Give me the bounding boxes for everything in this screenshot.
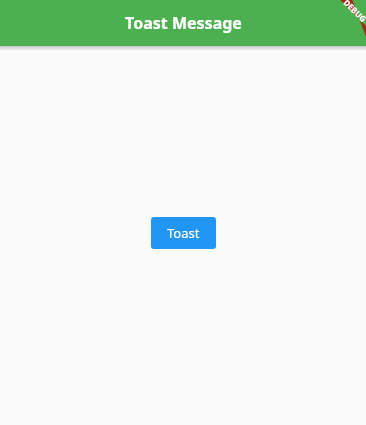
button[interactable]: Toast — [151, 217, 216, 249]
staticText: Toast Message — [125, 12, 242, 34]
staticText: Toast — [167, 224, 200, 242]
